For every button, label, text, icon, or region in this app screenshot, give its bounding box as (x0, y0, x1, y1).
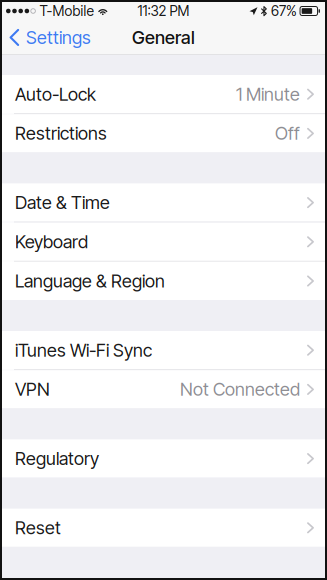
staticText: Language & Region (15, 270, 165, 292)
staticText: T-Mobile (39, 2, 93, 19)
staticText: Settings (26, 27, 91, 48)
staticText: Reset (15, 517, 61, 539)
staticText: 1 Minute (236, 83, 300, 105)
button[interactable]: Auto-Lock (2, 75, 325, 113)
button[interactable]: Language & Region (2, 262, 325, 300)
button[interactable]: Restrictions (2, 114, 325, 152)
staticText: 67% (271, 2, 297, 19)
button[interactable]: Regulatory (2, 439, 325, 478)
button[interactable]: Date & Time (2, 183, 325, 222)
staticText: 11:32 PM (137, 2, 189, 19)
button[interactable]: Keyboard (2, 223, 325, 261)
button[interactable]: iTunes Wi-Fi Sync (2, 331, 325, 369)
staticText: Off (275, 122, 300, 144)
staticText: General (132, 27, 195, 48)
staticText: Restrictions (15, 122, 107, 144)
staticText: Not Connected (180, 378, 300, 400)
button[interactable]: Settings (2, 20, 101, 55)
staticText: Date & Time (15, 192, 110, 213)
staticText: Regulatory (15, 448, 99, 469)
staticText: Auto-Lock (15, 83, 96, 105)
staticText: iTunes Wi-Fi Sync (15, 339, 152, 361)
staticText: Keyboard (15, 231, 88, 253)
button[interactable]: VPN (2, 370, 325, 408)
staticText: VPN (15, 378, 50, 400)
button[interactable]: Reset (2, 509, 325, 547)
